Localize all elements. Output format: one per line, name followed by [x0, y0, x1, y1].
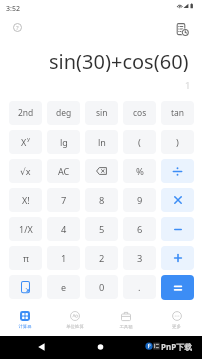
button[interactable]: tan — [161, 101, 194, 125]
button[interactable]: Help — [8, 18, 27, 37]
staticText: PnP下载 — [161, 341, 193, 352]
staticText: cos — [133, 107, 147, 119]
button[interactable]: 1 — [47, 246, 80, 270]
staticText: y — [27, 135, 31, 143]
staticText: ln — [98, 136, 106, 148]
button[interactable]: Delete — [85, 159, 118, 183]
button[interactable]: cos — [123, 101, 156, 125]
button[interactable]: Divide — [161, 159, 194, 183]
staticText: ) — [176, 136, 179, 149]
staticText: 2nd — [18, 107, 34, 119]
staticText: e — [61, 281, 67, 293]
button[interactable]: AC — [47, 159, 80, 183]
staticText: 9 — [137, 194, 143, 207]
button[interactable]: 0 — [85, 275, 118, 299]
button[interactable]: √x — [9, 159, 42, 183]
staticText: 7 — [61, 194, 67, 207]
button[interactable]: deg — [47, 101, 80, 125]
button[interactable]: Equals — [161, 275, 194, 300]
button[interactable]: 计算器 — [0, 305, 50, 336]
staticText: ( — [138, 136, 141, 149]
button[interactable]: 7 — [47, 188, 80, 212]
staticText: π — [23, 252, 29, 264]
staticText: ? — [16, 24, 19, 32]
staticText: AC — [58, 165, 70, 177]
button[interactable]: 2nd — [9, 101, 42, 125]
staticText: 计算器 — [18, 324, 32, 330]
staticText: 更多 — [172, 324, 181, 330]
button[interactable]: e — [47, 275, 80, 299]
button[interactable]: Minus — [161, 217, 194, 241]
button[interactable]: 4 — [47, 217, 80, 241]
staticText: X! — [22, 194, 30, 206]
button[interactable]: ( — [123, 130, 156, 154]
staticText: tan — [171, 107, 185, 119]
button[interactable]: 单位换算 — [50, 305, 100, 336]
button[interactable]: X to the power of y — [9, 130, 42, 154]
staticText: sin — [96, 107, 108, 119]
staticText: 0 — [99, 281, 105, 294]
staticText: 1 — [61, 252, 67, 265]
button[interactable]: 8 — [85, 188, 118, 212]
staticText: 5 — [99, 223, 105, 236]
staticText: 4 — [61, 223, 67, 236]
button[interactable]: 2 — [85, 246, 118, 270]
button[interactable]: % — [123, 159, 156, 183]
button[interactable]: 3 — [123, 246, 156, 270]
button[interactable]: 1/X — [9, 217, 42, 241]
staticText: sin(30)+cos(60) — [49, 48, 189, 72]
staticText: 8 — [99, 194, 105, 207]
staticText: 3 — [137, 252, 143, 265]
button[interactable]: sin — [85, 101, 118, 125]
button[interactable]: 5 — [85, 217, 118, 241]
button[interactable]: π — [9, 246, 42, 270]
staticText: X — [21, 136, 27, 148]
staticText: 单位换算 — [66, 324, 84, 330]
button[interactable]: X! — [9, 188, 42, 212]
button[interactable]: 6 — [123, 217, 156, 241]
staticText: 2 — [99, 252, 105, 265]
button[interactable]: lg — [47, 130, 80, 154]
staticText: 6 — [137, 223, 143, 236]
button[interactable]: 9 — [123, 188, 156, 212]
staticText: 工具箱 — [119, 324, 133, 330]
staticText: 3:52 — [6, 4, 20, 14]
staticText: √x — [20, 165, 31, 177]
button[interactable]: History — [173, 20, 192, 39]
button[interactable]: Switch layout — [9, 275, 42, 299]
button[interactable]: 工具箱 — [100, 305, 151, 336]
staticText: 1/X — [19, 223, 33, 235]
button[interactable]: 更多 — [151, 305, 202, 336]
staticText: . — [138, 281, 141, 294]
staticText: deg — [56, 107, 72, 119]
staticText: 1 — [185, 79, 191, 92]
staticText: lg — [60, 136, 68, 148]
button[interactable]: ln — [85, 130, 118, 154]
button[interactable]: Multiply — [161, 188, 194, 212]
staticText: % — [136, 165, 144, 178]
button[interactable]: . — [123, 275, 156, 299]
button[interactable]: Plus — [161, 246, 194, 270]
button[interactable]: ) — [161, 130, 194, 154]
